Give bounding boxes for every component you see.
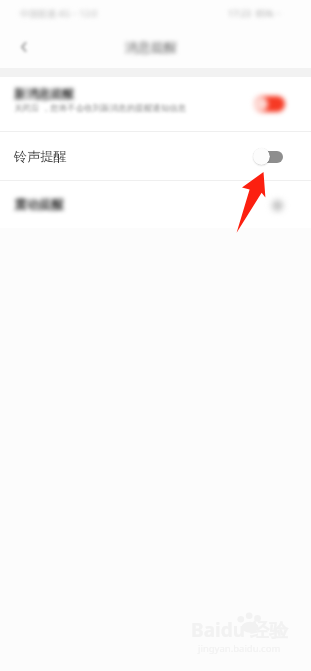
staticText: 新消息提醒: [14, 86, 74, 101]
staticText: 中国联通 4G ·· 12:0: [20, 7, 98, 19]
staticText: Baidu 经验: [191, 617, 288, 643]
staticText: 铃声提醒: [14, 148, 67, 165]
staticText: jingyan.baidu.com: [198, 642, 281, 655]
button[interactable]: 震动提醒: [0, 181, 311, 228]
staticText: 关闭后 ，您将不会收到新消息的提醒通知信息: [14, 102, 187, 114]
staticText: 震动提醒: [14, 197, 64, 213]
button[interactable]: 铃声提醒: [0, 132, 311, 180]
button[interactable]: Back: [4, 27, 44, 67]
button[interactable]: 新消息提醒: [0, 77, 311, 131]
staticText: 消息提醒: [125, 39, 177, 55]
staticText: 17:23 85% ··: [228, 7, 281, 19]
